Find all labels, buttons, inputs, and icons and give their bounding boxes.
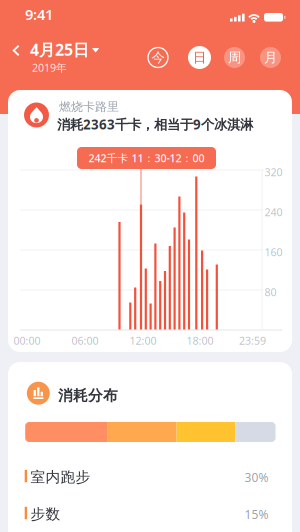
button[interactable]: 步数 <box>8 500 292 526</box>
button[interactable]: 月 <box>260 47 281 68</box>
staticText: 燃烧卡路里 <box>59 99 119 114</box>
staticText: 月 <box>264 49 277 66</box>
staticText: 242千卡 11：30-12：00 <box>88 151 204 165</box>
staticText: 2019年 <box>32 60 67 75</box>
staticText: 160 <box>264 245 282 259</box>
staticText: 步数 <box>30 505 60 523</box>
button[interactable]: 选择日期 <box>30 39 100 60</box>
button[interactable]: 日 <box>188 46 211 69</box>
staticText: 00:00 <box>13 333 40 348</box>
button[interactable]: 今 <box>147 47 168 68</box>
staticText: 消耗2363千卡，相当于9个冰淇淋 <box>57 115 253 133</box>
staticText: 今 <box>151 49 164 66</box>
staticText: 06:00 <box>71 333 98 348</box>
staticText: 240 <box>264 205 282 219</box>
staticText: 23:59 <box>239 333 266 348</box>
staticText: 消耗分布 <box>58 386 118 404</box>
staticText: 320 <box>264 165 282 179</box>
staticText: 4月25日 <box>30 39 89 60</box>
staticText: 9:41 <box>25 4 53 24</box>
staticText: 日 <box>193 49 206 66</box>
staticText: 80 <box>264 285 276 299</box>
staticText: 30% <box>244 469 268 485</box>
staticText: 18:00 <box>186 333 213 348</box>
staticText: 12:00 <box>129 333 156 348</box>
staticText: 周 <box>228 49 241 66</box>
staticText: 室内跑步 <box>30 468 90 486</box>
button[interactable]: 室内跑步 <box>8 463 292 489</box>
button[interactable]: 周 <box>224 47 245 68</box>
staticText: 15% <box>244 506 268 522</box>
button[interactable]: Back <box>6 38 26 62</box>
